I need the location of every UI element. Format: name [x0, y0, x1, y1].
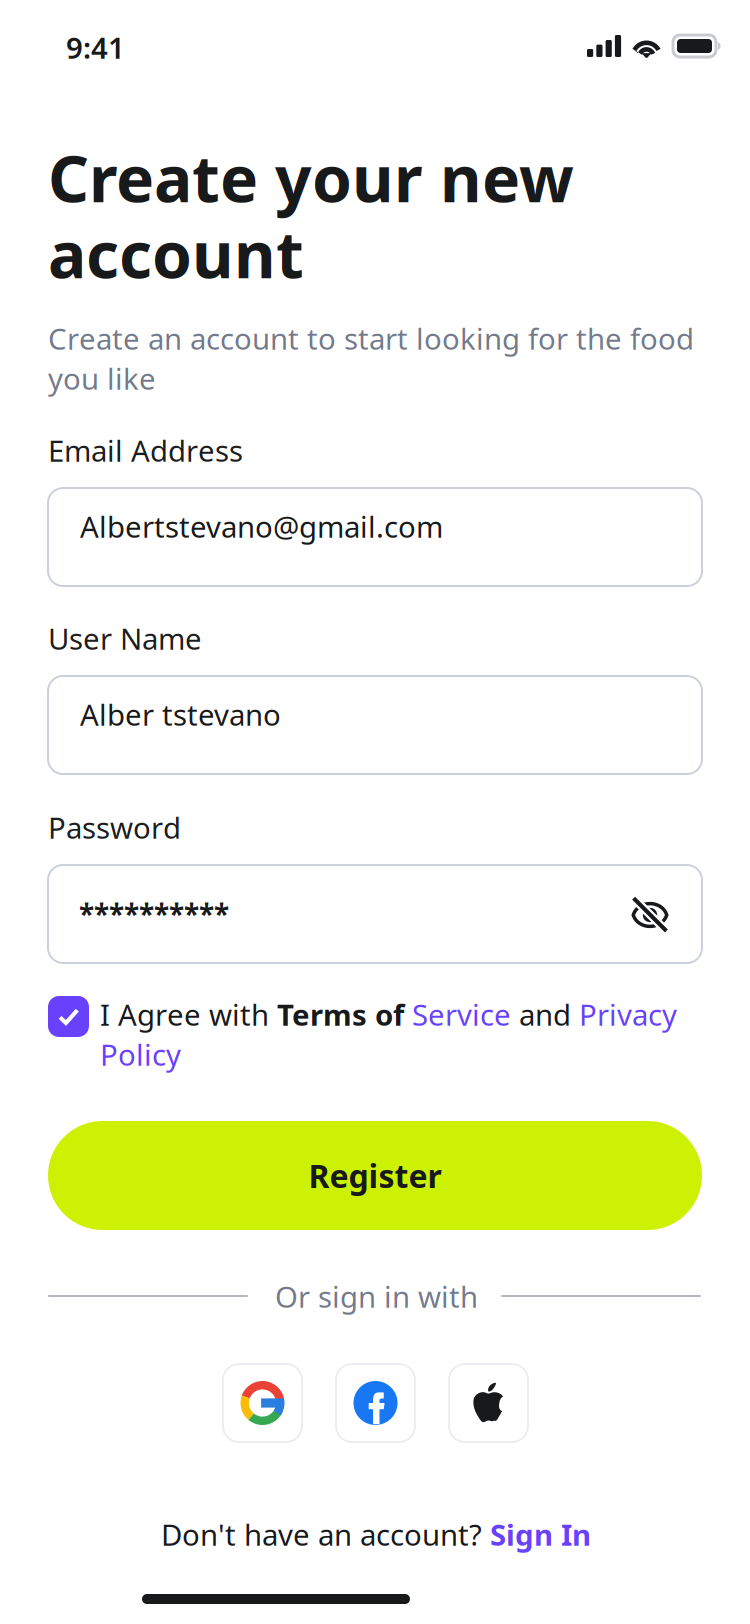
button[interactable]: Don't have an account? — [161, 1515, 591, 1554]
staticText: you like — [48, 359, 156, 398]
staticText: Register — [308, 1154, 441, 1197]
staticText: Service — [412, 995, 511, 1034]
button[interactable]: Sign in with Facebook — [336, 1364, 415, 1442]
staticText: Email Address — [48, 431, 243, 470]
staticText: account — [48, 211, 304, 296]
staticText: Or sign in with — [275, 1277, 478, 1316]
staticText: Sign In — [490, 1515, 591, 1554]
staticText: Password — [48, 808, 181, 847]
staticText: Don't have an account? — [161, 1515, 490, 1554]
staticText: 9:41 — [66, 28, 125, 67]
staticText: User Name — [48, 619, 202, 658]
button[interactable]: Register — [48, 1121, 702, 1230]
staticText: Albertstevano@gmail.com — [80, 507, 443, 546]
staticText: Alber tstevano — [80, 695, 281, 734]
staticText: Terms of — [277, 995, 412, 1034]
staticText: ********** — [79, 895, 229, 932]
button[interactable]: Show password — [631, 896, 669, 934]
staticText: I Agree with — [100, 995, 277, 1034]
button[interactable]: Sign in with Apple — [449, 1364, 528, 1442]
staticText: and — [511, 995, 579, 1034]
staticText: Policy — [100, 1035, 181, 1074]
staticText: Create your new — [48, 135, 574, 220]
button[interactable]: I agree with Terms of Service and Privac… — [48, 996, 89, 1037]
button[interactable]: Sign in with Google — [223, 1364, 302, 1442]
staticText: Create an account to start looking for t… — [48, 319, 694, 358]
staticText: Privacy — [579, 995, 677, 1034]
